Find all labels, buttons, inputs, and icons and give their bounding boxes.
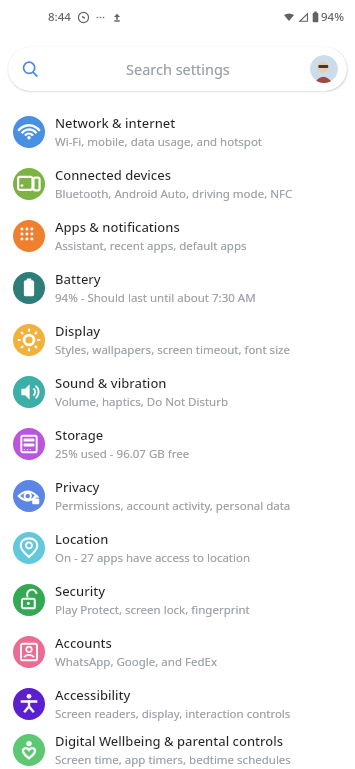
staticText: Styles, wallpapers, screen timeout, font… xyxy=(55,342,290,358)
staticText: On - 27 apps have access to location xyxy=(55,550,251,566)
staticText: 25% used - 96.07 GB free xyxy=(55,446,190,462)
button[interactable]: Accessibility xyxy=(0,678,355,730)
button[interactable]: Storage xyxy=(0,418,355,470)
staticText: Accounts xyxy=(55,634,112,652)
staticText: Search settings xyxy=(126,59,230,79)
button[interactable]: Apps & notifications xyxy=(0,210,355,262)
staticText: Assistant, recent apps, default apps xyxy=(55,238,247,254)
button[interactable]: Display xyxy=(0,314,355,366)
button[interactable]: Battery xyxy=(0,262,355,314)
staticText: Digital Wellbeing & parental controls xyxy=(55,732,284,750)
staticText: Screen readers, display, interaction con… xyxy=(55,706,291,722)
staticText: Location xyxy=(55,530,109,548)
staticText: Connected devices xyxy=(55,166,172,184)
staticText: Network & internet xyxy=(55,114,176,132)
staticText: 94% - Should last until about 7:30 AM xyxy=(55,290,256,306)
staticText: 94% xyxy=(321,9,344,25)
button[interactable]: Location xyxy=(0,522,355,574)
staticText: Accessibility xyxy=(55,686,131,704)
button[interactable]: Digital Wellbeing & parental controls xyxy=(0,730,355,769)
staticText: Security xyxy=(55,582,105,600)
button[interactable]: Privacy xyxy=(0,470,355,522)
button[interactable]: Search settings xyxy=(8,47,347,91)
staticText: Sound & vibration xyxy=(55,374,167,392)
staticText: Wi-Fi, mobile, data usage, and hotspot xyxy=(55,134,262,150)
staticText: Battery xyxy=(55,270,101,288)
staticText: Storage xyxy=(55,426,104,444)
staticText: Play Protect, screen lock, fingerprint xyxy=(55,602,250,618)
button[interactable]: Accounts xyxy=(0,626,355,678)
staticText: WhatsApp, Google, and FedEx xyxy=(55,654,217,670)
staticText: Permissions, account activity, personal … xyxy=(55,498,291,514)
button[interactable]: Security xyxy=(0,574,355,626)
staticText: Screen time, app timers, bedtime schedul… xyxy=(55,752,291,768)
staticText: Privacy xyxy=(55,478,100,496)
staticText: 8:44 xyxy=(48,9,71,25)
button[interactable]: Network & internet xyxy=(0,106,355,158)
staticText: Volume, haptics, Do Not Disturb xyxy=(55,394,228,410)
staticText: Apps & notifications xyxy=(55,218,180,236)
button[interactable]: Connected devices xyxy=(0,158,355,210)
button[interactable]: Account profile xyxy=(310,55,338,83)
button[interactable]: Sound & vibration xyxy=(0,366,355,418)
staticText: Bluetooth, Android Auto, driving mode, N… xyxy=(55,186,293,202)
staticText: Display xyxy=(55,322,101,340)
